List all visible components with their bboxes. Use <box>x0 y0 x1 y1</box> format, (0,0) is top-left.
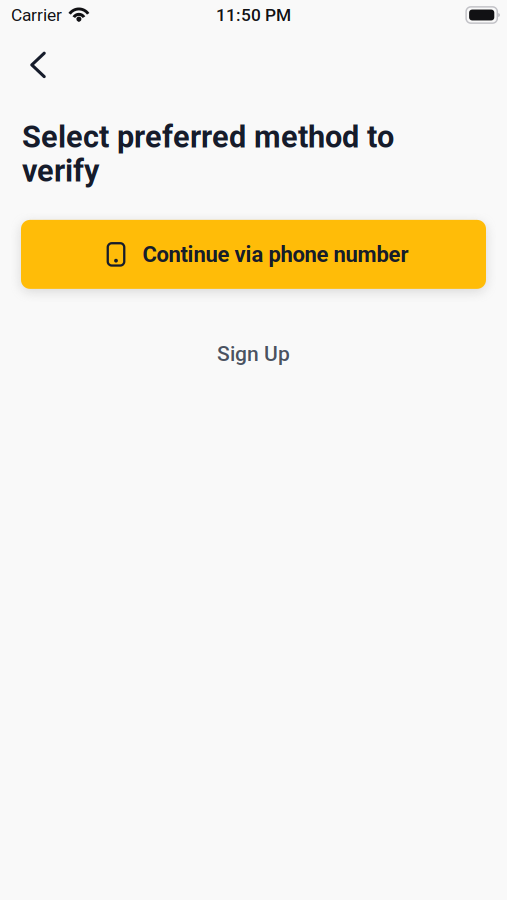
staticText: 11:50 PM <box>216 5 291 25</box>
staticText: Sign Up <box>217 341 290 366</box>
button[interactable]: Sign Up <box>0 333 507 375</box>
staticText: Select preferred method to verify <box>22 119 394 189</box>
button[interactable]: Back <box>15 42 61 88</box>
staticText: Continue via phone number <box>142 241 408 267</box>
staticText: Carrier <box>11 5 62 25</box>
button[interactable]: Continue via phone number <box>21 220 486 289</box>
